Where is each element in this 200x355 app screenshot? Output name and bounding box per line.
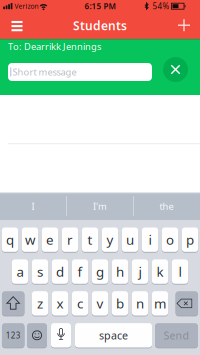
button[interactable] <box>2 323 24 347</box>
staticText: p <box>186 231 194 248</box>
staticText: 123 <box>6 330 21 341</box>
button[interactable] <box>163 57 188 82</box>
button[interactable] <box>27 323 47 347</box>
button[interactable]: u <box>122 227 138 252</box>
button[interactable]: i <box>142 227 158 252</box>
button[interactable]: z <box>32 291 48 316</box>
staticText: z <box>37 294 43 312</box>
button[interactable]: d <box>52 259 68 284</box>
staticText: u <box>126 231 134 248</box>
button[interactable]: a <box>12 259 28 284</box>
button[interactable]: h <box>112 259 128 284</box>
button[interactable]: s <box>32 259 48 284</box>
staticText: w <box>25 231 35 248</box>
staticText: Students <box>73 17 127 33</box>
staticText: 54% <box>152 1 169 11</box>
button[interactable]: b <box>112 291 128 316</box>
staticText: a <box>16 263 23 280</box>
staticText: o <box>166 231 174 248</box>
button[interactable]: g <box>92 259 108 284</box>
staticText: k <box>156 263 163 280</box>
button[interactable]: space <box>75 323 152 347</box>
button[interactable]: r <box>62 227 78 252</box>
staticText: s <box>37 263 43 280</box>
button[interactable] <box>175 16 193 34</box>
staticText: space <box>99 328 128 342</box>
button[interactable]: I <box>3 197 63 215</box>
staticText: Send <box>163 328 189 342</box>
button[interactable]: c <box>72 291 88 316</box>
button[interactable]: k <box>152 259 168 284</box>
staticText: r <box>67 231 73 248</box>
button[interactable]: q <box>2 227 18 252</box>
staticText: i <box>148 231 151 248</box>
button[interactable] <box>176 291 198 316</box>
staticText: the <box>159 200 173 212</box>
staticText: 6:15 PM <box>84 1 115 11</box>
staticText: I'm <box>93 200 107 212</box>
staticText: v <box>96 294 103 312</box>
button[interactable] <box>7 16 26 36</box>
button[interactable] <box>51 323 71 347</box>
button[interactable]: l <box>172 259 188 284</box>
staticText: Verizon <box>14 2 38 11</box>
button[interactable]: v <box>92 291 108 316</box>
staticText: j <box>138 263 141 280</box>
button[interactable]: e <box>42 227 58 252</box>
staticText: To: Dearrikk Jennings <box>8 40 101 53</box>
button[interactable]: I'm <box>70 197 130 215</box>
button[interactable]: j <box>132 259 148 284</box>
button[interactable]: f <box>72 259 88 284</box>
button[interactable]: x <box>52 291 68 316</box>
staticText: l <box>178 263 181 280</box>
staticText: Short message <box>12 66 76 78</box>
button[interactable] <box>155 323 198 347</box>
staticText: g <box>96 263 104 280</box>
staticText: e <box>46 231 54 248</box>
button[interactable] <box>8 63 152 81</box>
button[interactable]: t <box>82 227 98 252</box>
staticText: b <box>116 294 124 312</box>
button[interactable]: n <box>132 291 148 316</box>
button[interactable]: the <box>136 197 196 215</box>
staticText: m <box>154 294 166 312</box>
button[interactable]: p <box>182 227 198 252</box>
button[interactable]: o <box>162 227 178 252</box>
staticText: c <box>77 294 83 312</box>
staticText: x <box>56 294 63 312</box>
staticText: f <box>77 263 82 280</box>
staticText: d <box>56 263 64 280</box>
staticText: I <box>31 200 34 212</box>
staticText: h <box>116 263 124 280</box>
staticText: q <box>6 231 14 248</box>
button[interactable] <box>2 291 24 316</box>
staticText: n <box>136 294 144 312</box>
button[interactable]: w <box>22 227 38 252</box>
button[interactable]: m <box>152 291 168 316</box>
button[interactable]: y <box>102 227 118 252</box>
staticText: y <box>106 231 113 248</box>
staticText: t <box>87 231 92 248</box>
